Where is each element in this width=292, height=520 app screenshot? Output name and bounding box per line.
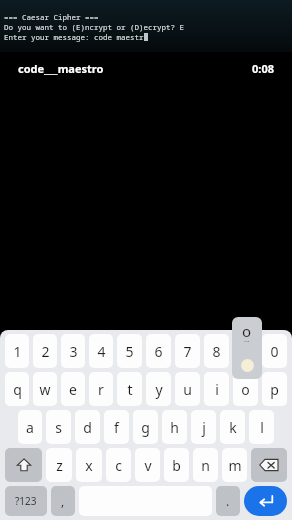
staticText: 1 xyxy=(13,342,22,361)
staticText: g xyxy=(141,418,150,437)
button[interactable]: r xyxy=(89,372,113,406)
staticText: o xyxy=(242,321,252,341)
staticText: , xyxy=(61,493,65,509)
button[interactable]: x xyxy=(76,448,102,482)
button[interactable]: o xyxy=(233,372,258,406)
button[interactable]: , xyxy=(51,486,75,516)
staticText: f xyxy=(114,418,119,437)
staticText: 0 xyxy=(270,342,279,361)
staticText: 3 xyxy=(69,342,78,361)
button[interactable]: h xyxy=(162,410,187,444)
staticText: i xyxy=(215,380,219,399)
staticText: ?123 xyxy=(15,494,37,508)
staticText: ... xyxy=(244,335,250,345)
button[interactable]: z xyxy=(46,448,72,482)
staticText: Do you want to (E)ncrypt or (D)ecrypt? E xyxy=(4,22,184,32)
button[interactable]: 2 xyxy=(33,334,57,368)
staticText: d xyxy=(83,418,92,437)
button[interactable]: l xyxy=(249,410,274,444)
button[interactable]: . xyxy=(216,486,240,516)
button[interactable]: m xyxy=(222,448,247,482)
staticText: a xyxy=(26,418,34,437)
staticText: 5 xyxy=(125,342,134,361)
staticText: u xyxy=(183,380,192,399)
staticText: c xyxy=(115,456,122,475)
button[interactable]: q xyxy=(5,372,29,406)
button[interactable]: n xyxy=(193,448,218,482)
button[interactable]: c xyxy=(106,448,131,482)
staticText: z xyxy=(56,456,63,475)
staticText: b xyxy=(172,456,181,475)
button[interactable]: u xyxy=(175,372,200,406)
staticText: 2 xyxy=(41,342,50,361)
button[interactable]: d xyxy=(75,410,100,444)
staticText: v xyxy=(144,456,152,475)
staticText: 6 xyxy=(154,342,163,361)
button[interactable]: 1 xyxy=(5,334,29,368)
button[interactable]: 7 xyxy=(175,334,200,368)
staticText: t xyxy=(127,380,133,399)
staticText: 4 xyxy=(97,342,106,361)
button[interactable]: p xyxy=(262,372,287,406)
button[interactable]: j xyxy=(191,410,216,444)
staticText: 8 xyxy=(212,342,221,361)
button[interactable]: Enter xyxy=(244,486,287,516)
staticText: r xyxy=(98,380,104,399)
button[interactable]: 0 xyxy=(262,334,287,368)
staticText: 0:08 xyxy=(252,61,274,76)
button[interactable]: Backspace xyxy=(251,448,287,482)
staticText: x xyxy=(85,456,93,475)
button[interactable]: s xyxy=(46,410,71,444)
staticText: 9 xyxy=(241,342,250,361)
staticText: . xyxy=(226,493,230,509)
button[interactable]: i xyxy=(204,372,229,406)
staticText: p xyxy=(270,380,279,399)
staticText: m xyxy=(228,456,242,475)
staticText: n xyxy=(201,456,210,475)
button[interactable]: 4 xyxy=(89,334,113,368)
button[interactable]: t xyxy=(117,372,142,406)
staticText: 7 xyxy=(183,342,192,361)
staticText: code___maestro xyxy=(18,61,104,76)
staticText: o xyxy=(241,380,250,399)
button[interactable]: Shift xyxy=(5,448,42,482)
button[interactable]: 9 xyxy=(233,334,258,368)
button[interactable]: a xyxy=(18,410,42,444)
staticText: y xyxy=(155,380,163,399)
button[interactable]: e xyxy=(61,372,85,406)
button[interactable]: g xyxy=(133,410,158,444)
button[interactable]: b xyxy=(164,448,189,482)
staticText: e xyxy=(69,380,77,399)
button[interactable]: ?123 xyxy=(5,486,47,516)
button[interactable]: 8 xyxy=(204,334,229,368)
staticText: Enter your message: code maestr xyxy=(4,32,144,42)
button[interactable]: 5 xyxy=(117,334,142,368)
staticText: l xyxy=(260,418,264,437)
button[interactable]: 3 xyxy=(61,334,85,368)
button[interactable]: v xyxy=(135,448,160,482)
button[interactable]: f xyxy=(104,410,129,444)
button[interactable]: 6 xyxy=(146,334,171,368)
staticText: === Caesar Cipher === xyxy=(4,12,99,22)
staticText: k xyxy=(229,418,237,437)
button[interactable]: k xyxy=(220,410,245,444)
button[interactable]: w xyxy=(33,372,57,406)
staticText: q xyxy=(13,380,22,399)
staticText: w xyxy=(39,380,51,399)
staticText: j xyxy=(202,418,206,437)
staticText: h xyxy=(170,418,179,437)
button[interactable]: y xyxy=(146,372,171,406)
staticText: s xyxy=(55,418,62,437)
